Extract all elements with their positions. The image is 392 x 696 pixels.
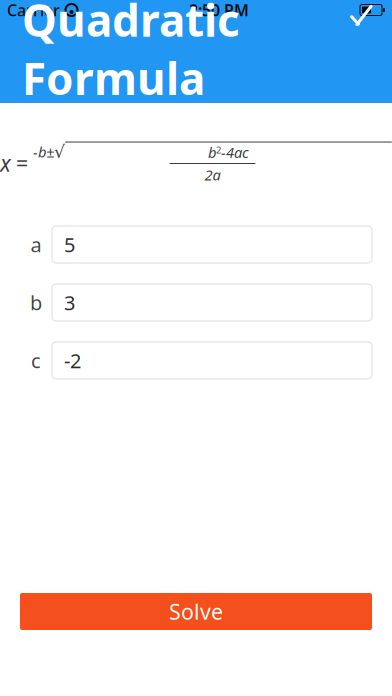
button[interactable]: 5 <box>52 226 372 263</box>
staticText: −4ac <box>221 142 249 162</box>
staticText: 2:50 PM <box>189 0 249 21</box>
staticText: Quadratic Formula <box>22 0 240 107</box>
staticText: 3 <box>64 289 75 316</box>
staticText: 5 <box>64 231 75 258</box>
staticText: a <box>30 231 41 258</box>
staticText: = <box>16 149 28 177</box>
staticText: √ <box>54 142 65 162</box>
staticText: 2a <box>204 165 220 184</box>
button[interactable]: Save <box>340 0 384 38</box>
staticText: b <box>208 142 216 162</box>
staticText: 2 <box>216 144 221 156</box>
staticText: b <box>30 289 42 316</box>
staticText: -2 <box>64 347 81 374</box>
button[interactable]: 3 <box>52 284 372 321</box>
staticText: Carrier <box>7 0 60 21</box>
staticText: x <box>0 148 11 178</box>
button[interactable]: Solve <box>20 593 372 630</box>
staticText: −b± <box>33 142 54 161</box>
staticText: Solve <box>169 597 223 626</box>
staticText: c <box>31 347 41 374</box>
button[interactable]: -2 <box>52 342 372 379</box>
